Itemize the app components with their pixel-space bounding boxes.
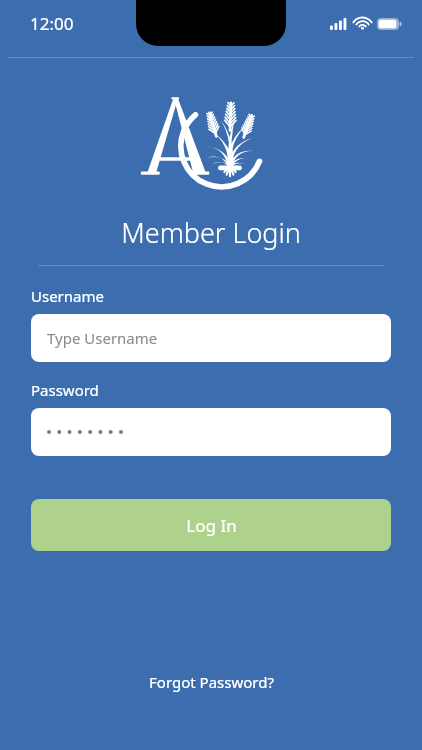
staticText: Type Username: [47, 328, 158, 348]
staticText: Log In: [186, 514, 237, 537]
staticText: Password: [31, 380, 391, 400]
staticText: Username: [31, 286, 391, 306]
button[interactable]: Forgot Password?: [135, 664, 288, 700]
staticText: Member Login: [121, 214, 301, 251]
button[interactable]: Type Username: [31, 314, 391, 362]
staticText: 12:00: [30, 12, 74, 35]
staticText: Forgot Password?: [149, 672, 274, 692]
button[interactable]: Password field: [31, 408, 391, 456]
button[interactable]: Log In: [31, 499, 391, 551]
